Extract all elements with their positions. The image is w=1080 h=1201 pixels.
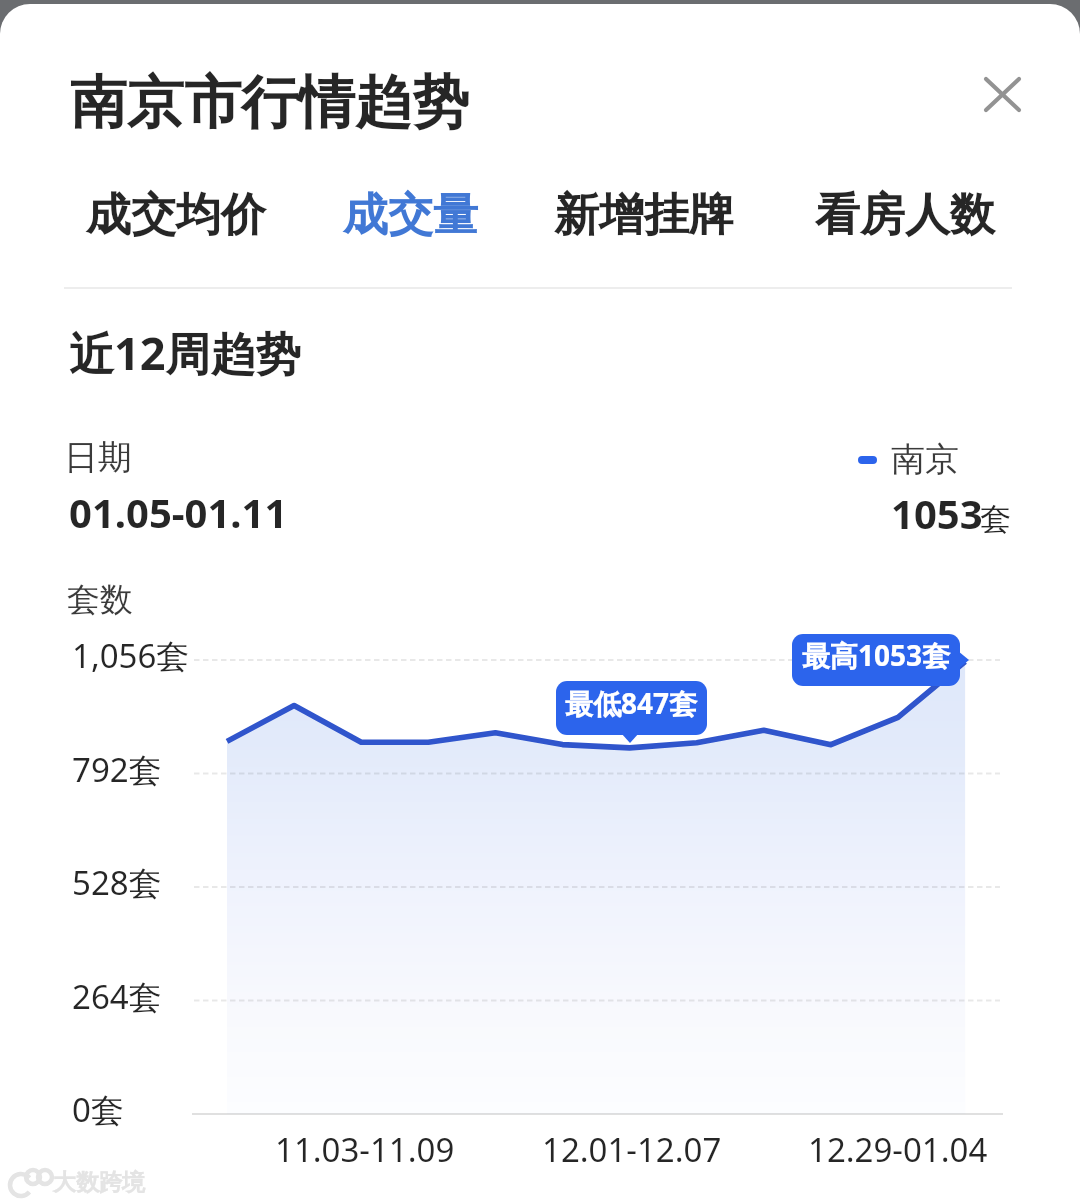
staticText: 套数 [67, 579, 133, 621]
staticText: 11.03-11.09 [275, 1127, 455, 1172]
button[interactable]: 看房人数 [799, 175, 1011, 256]
staticText: 南京市行情趋势 [70, 67, 469, 139]
button[interactable]: Close [972, 67, 1033, 128]
staticText: 看房人数 [815, 187, 995, 244]
staticText: 成交均价 [86, 187, 266, 244]
button[interactable]: 成交量 [327, 175, 494, 256]
staticText: 大数跨境 [53, 1168, 145, 1197]
button[interactable]: 成交均价 [70, 175, 282, 256]
button[interactable]: 新增挂牌 [538, 175, 750, 256]
staticText: 套 [980, 500, 1011, 539]
staticText: 792套 [72, 747, 162, 792]
staticText: 0套 [72, 1087, 124, 1132]
staticText: 近12周趋势 [69, 322, 301, 383]
staticText: 12.29-01.04 [808, 1127, 988, 1172]
staticText: 12.01-12.07 [542, 1127, 722, 1172]
staticText: 最低847套 [565, 684, 698, 722]
staticText: 264套 [72, 974, 162, 1019]
staticText: 新增挂牌 [554, 187, 734, 244]
staticText: 1,056套 [72, 633, 190, 678]
staticText: 日期 [64, 436, 132, 479]
staticText: 最高1053套 [802, 636, 951, 674]
staticText: 南京 [891, 438, 959, 481]
staticText: 1053 [891, 486, 983, 540]
staticText: 528套 [72, 860, 162, 905]
staticText: 01.05-01.11 [69, 485, 288, 539]
staticText: 成交量 [343, 187, 478, 244]
